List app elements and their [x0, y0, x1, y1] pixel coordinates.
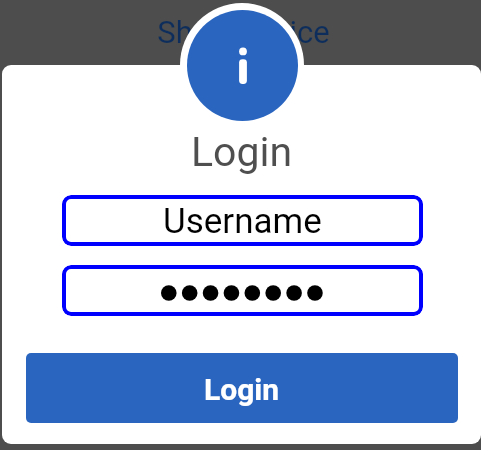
staticText: Short Notice: [3, 14, 481, 50]
staticText: Login: [2, 128, 481, 176]
button[interactable]: Username: [62, 195, 423, 246]
staticText: Login: [204, 372, 280, 407]
staticText: Username: [163, 201, 322, 242]
button[interactable]: Information: [187, 10, 298, 121]
button[interactable]: Login: [26, 353, 458, 423]
button[interactable]: [62, 265, 423, 316]
